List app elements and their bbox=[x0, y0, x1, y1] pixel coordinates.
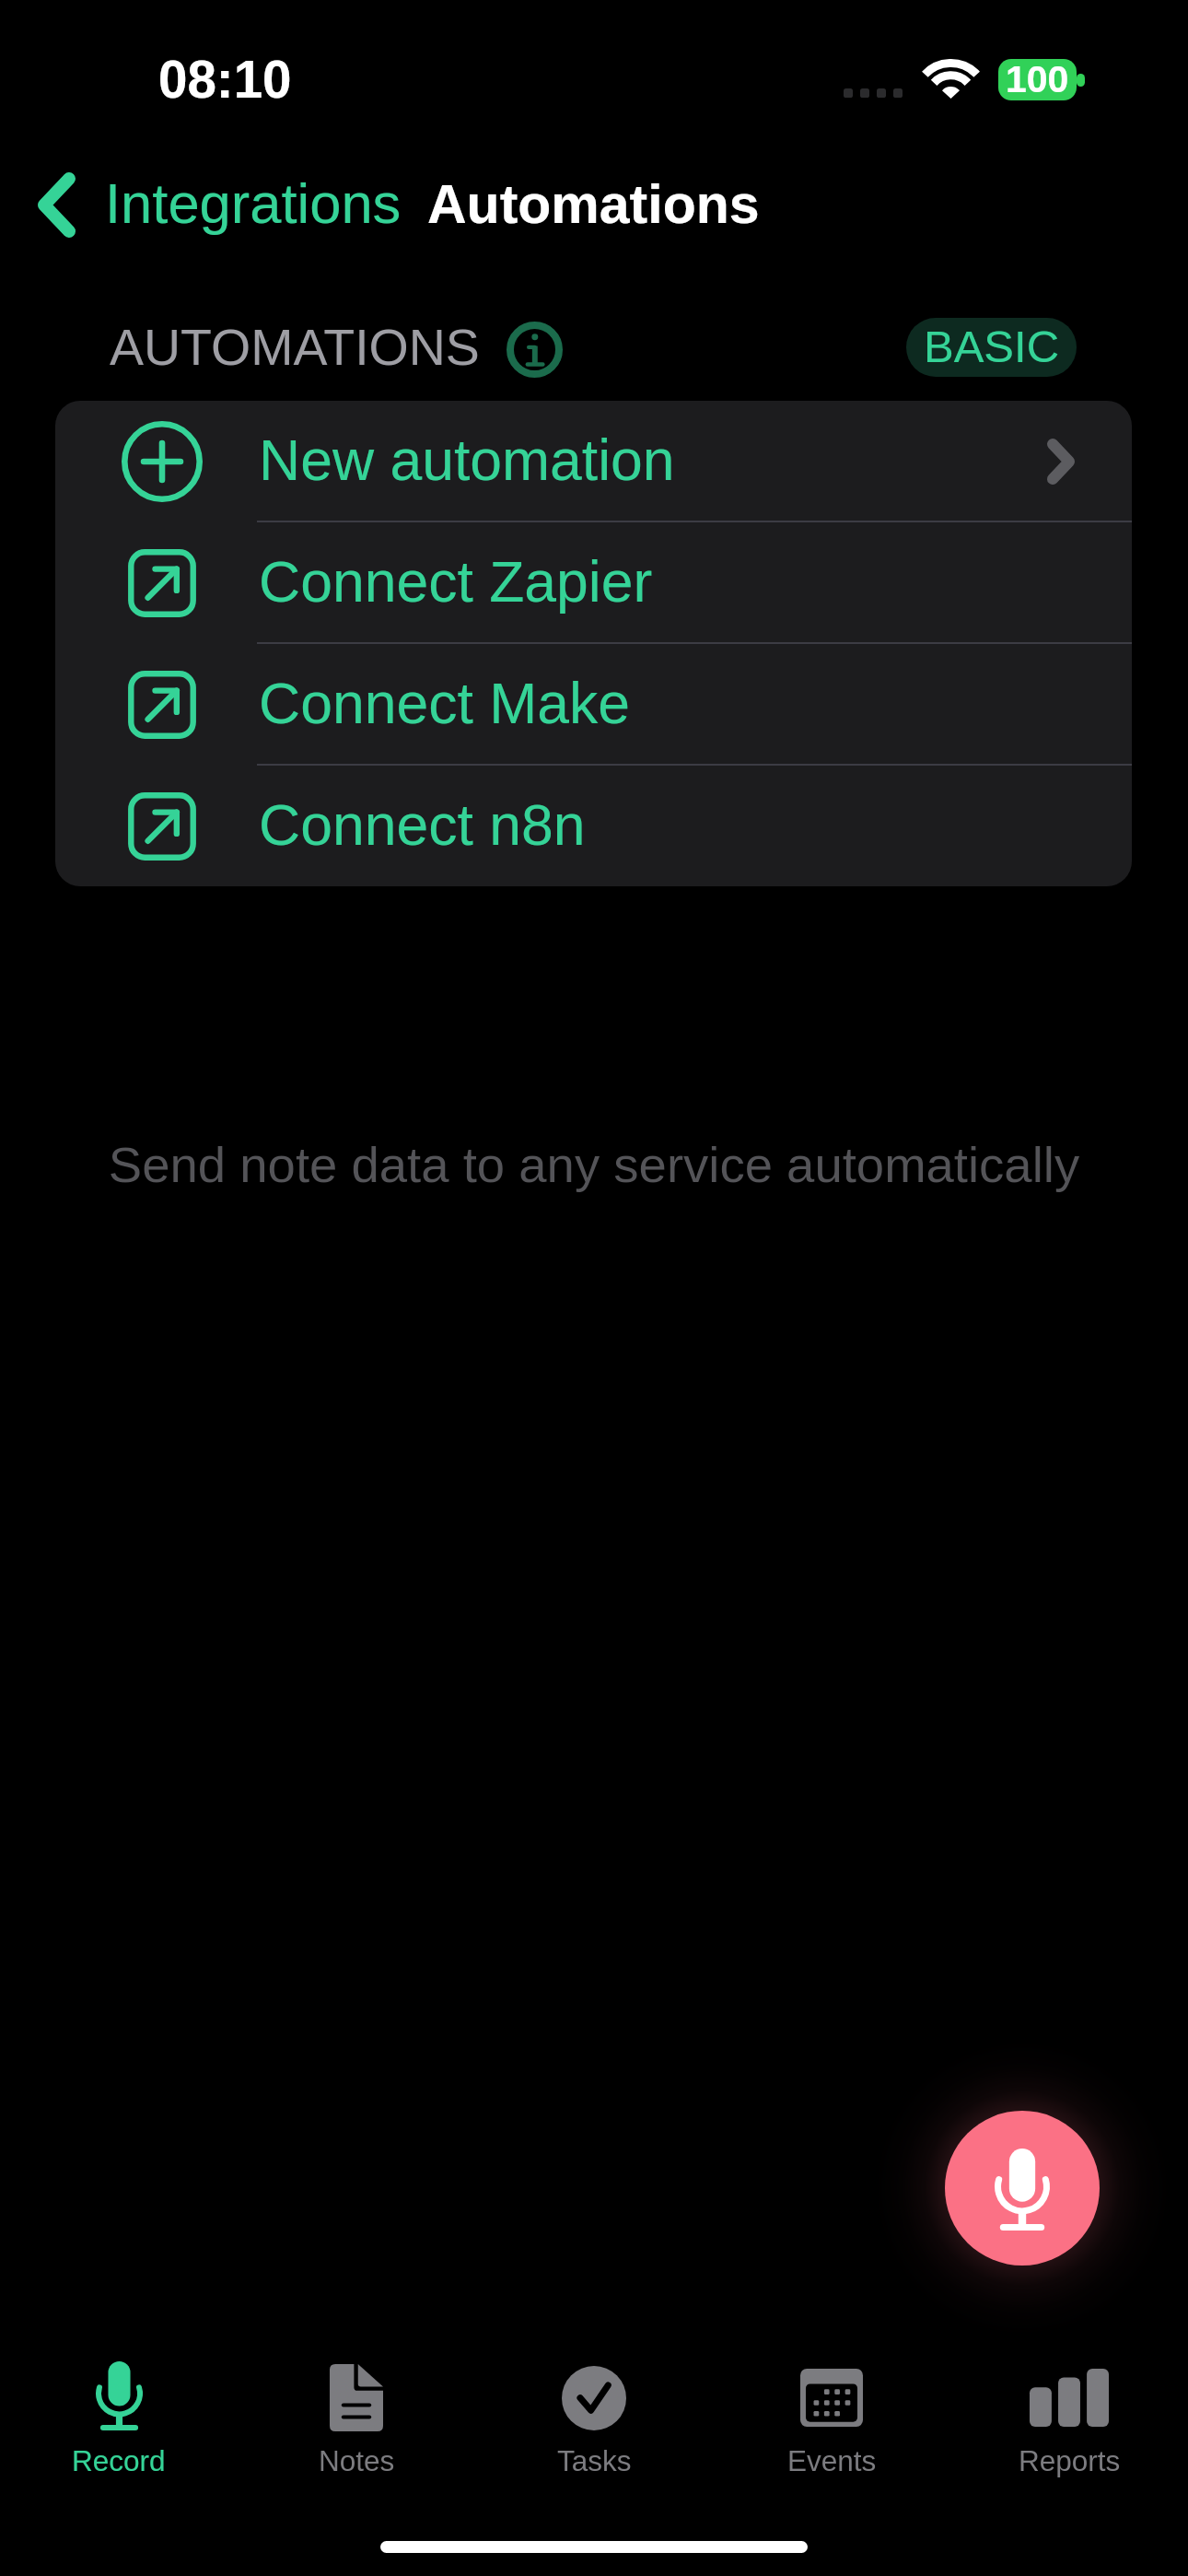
button[interactable]: Automations info bbox=[507, 322, 563, 378]
button[interactable]: Tasks bbox=[475, 2322, 713, 2576]
staticText: Events bbox=[787, 2444, 877, 2476]
staticText: Record bbox=[72, 2444, 166, 2476]
button[interactable]: BASIC bbox=[906, 318, 1077, 377]
staticText: Automations bbox=[427, 174, 760, 235]
button[interactable]: Record bbox=[0, 2322, 238, 2576]
staticText: Connect n8n bbox=[259, 792, 586, 857]
button[interactable]: Connect n8n bbox=[55, 766, 1132, 886]
staticText: 100 bbox=[1006, 59, 1069, 100]
staticText: AUTOMATIONS bbox=[110, 319, 480, 376]
button[interactable]: Reports bbox=[950, 2322, 1188, 2576]
button[interactable]: Notes bbox=[238, 2322, 475, 2576]
button[interactable]: Connect Zapier bbox=[55, 522, 1132, 644]
staticText: Reports bbox=[1019, 2444, 1121, 2476]
staticText: Tasks bbox=[557, 2444, 632, 2476]
staticText: New automation bbox=[259, 427, 675, 492]
button[interactable]: Connect Make bbox=[55, 644, 1132, 766]
staticText: Connect Make bbox=[259, 671, 630, 735]
staticText: Integrations bbox=[105, 171, 402, 235]
button[interactable]: Back to Integrations bbox=[38, 172, 402, 238]
button[interactable]: Events bbox=[713, 2322, 950, 2576]
button[interactable]: Record a note bbox=[945, 2111, 1100, 2266]
other: Back to Integrations bbox=[38, 172, 76, 238]
button[interactable]: New automation bbox=[55, 401, 1132, 522]
staticText: Connect Zapier bbox=[259, 549, 653, 614]
staticText: Notes bbox=[319, 2444, 395, 2476]
staticText: Send note data to any service automatica… bbox=[0, 1137, 1188, 1193]
staticText: 08:10 bbox=[158, 51, 292, 109]
staticText: BASIC bbox=[924, 322, 1060, 372]
